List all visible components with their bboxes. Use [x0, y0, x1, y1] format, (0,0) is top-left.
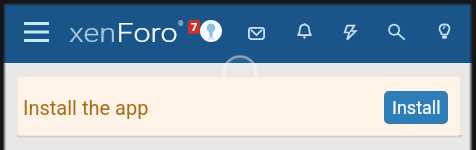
staticText: 7 [191, 21, 198, 34]
staticText: ® [178, 20, 184, 28]
staticText: Install [392, 97, 441, 118]
button[interactable]: Help [422, 8, 466, 54]
button[interactable]: What's new [328, 9, 372, 55]
staticText: Foro [117, 19, 178, 48]
staticText: Install the app [23, 96, 149, 119]
button[interactable]: Alerts [282, 8, 326, 54]
button[interactable]: Inbox [234, 10, 278, 56]
staticText: xen [69, 19, 117, 48]
button[interactable]: Search [374, 9, 418, 55]
button[interactable]: Install [384, 91, 448, 124]
button[interactable]: Account [187, 15, 224, 46]
button[interactable]: Menu [11, 11, 62, 54]
